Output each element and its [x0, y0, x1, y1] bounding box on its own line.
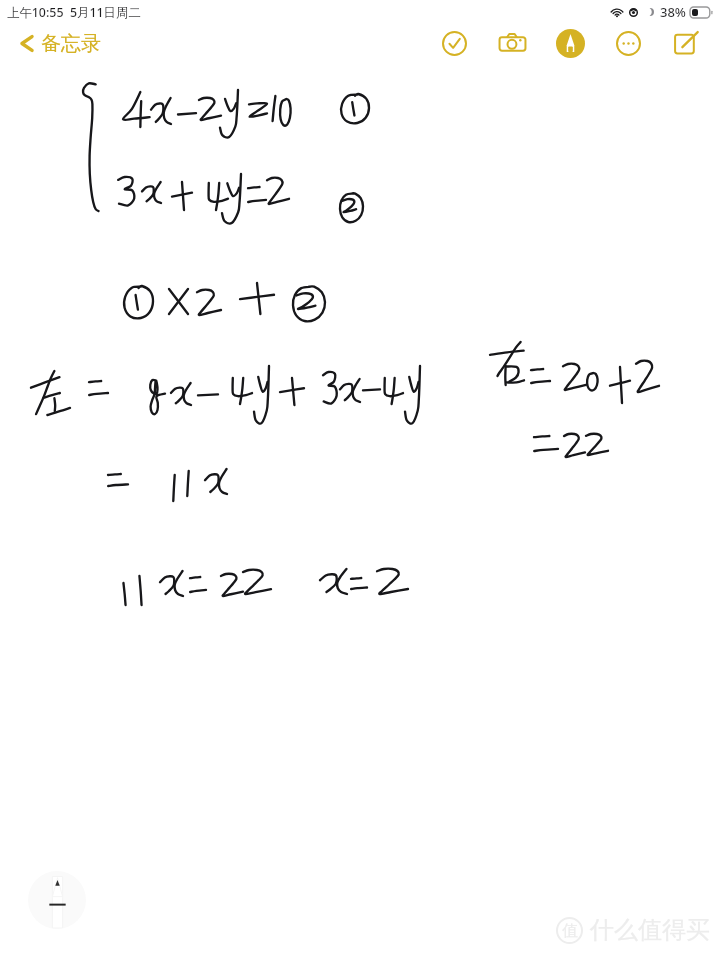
staticText: 备忘录 — [41, 31, 101, 56]
button[interactable]: Camera — [495, 26, 529, 60]
button[interactable]: Pen tool — [28, 871, 86, 929]
staticText: 什么值得买 — [590, 915, 710, 945]
staticText: 值 — [562, 921, 578, 941]
button[interactable]: New note — [669, 26, 703, 60]
staticText: 上午10:55 5月11日周二 — [7, 4, 141, 21]
button[interactable]: Done — [437, 26, 471, 60]
button[interactable]: 备忘录 — [0, 27, 115, 60]
button[interactable]: More options — [611, 26, 645, 60]
staticText: 38% — [660, 3, 686, 21]
button[interactable]: Markup — [553, 26, 587, 60]
